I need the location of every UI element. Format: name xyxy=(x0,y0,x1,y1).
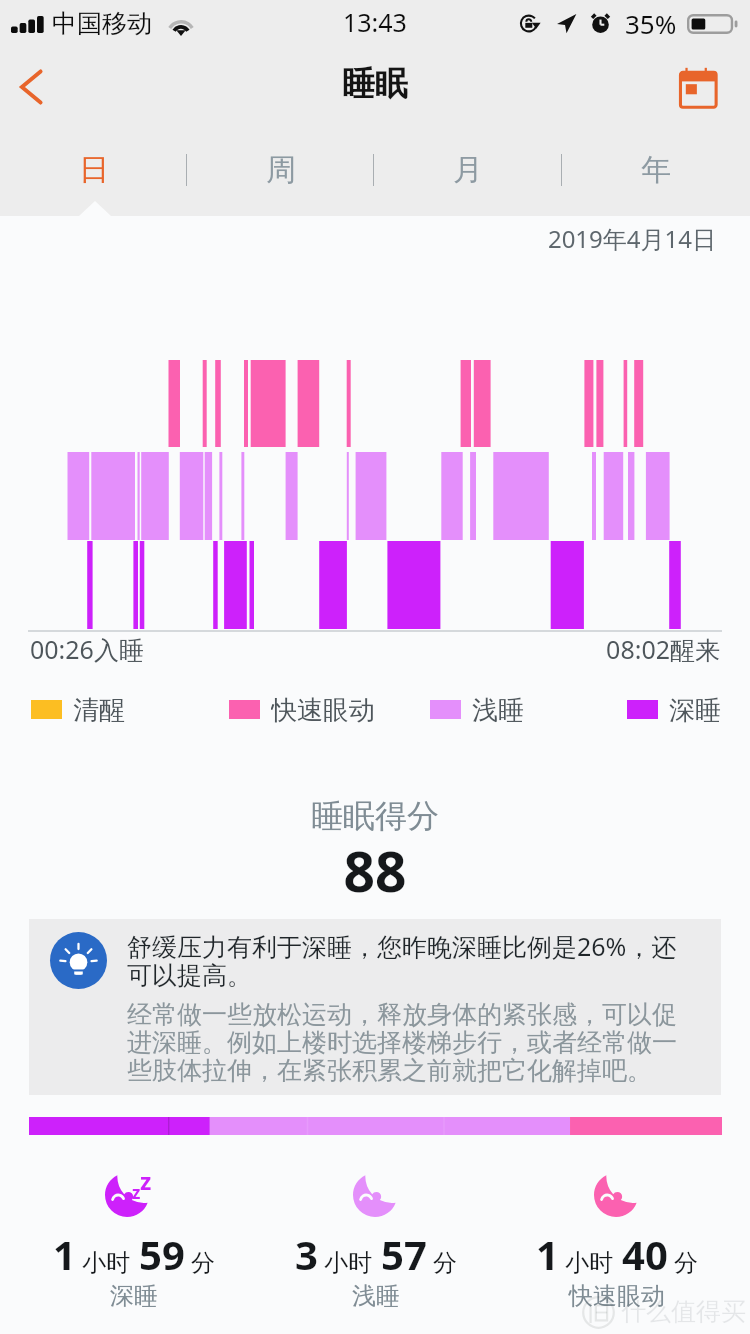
staticText: 经常做一些放松运动，释放身体的紧张感，可以促进深睡。例如上楼时选择楼梯步行，或者… xyxy=(127,999,693,1086)
staticText: z xyxy=(140,1165,152,1196)
staticText: 13:43 xyxy=(343,5,407,39)
staticText: 日 xyxy=(79,151,109,189)
staticText: 月 xyxy=(453,151,483,189)
staticText: 59 xyxy=(139,1227,185,1281)
button[interactable]: 浅睡 xyxy=(430,694,524,724)
staticText: 00:26入睡 xyxy=(30,632,144,666)
staticText: 88 xyxy=(0,833,750,908)
staticText: 清醒 xyxy=(73,694,125,724)
button[interactable]: 快速眼动 xyxy=(229,694,375,724)
staticText: 分 xyxy=(433,1248,457,1278)
button[interactable]: z xyxy=(13,1167,255,1311)
staticText: 深睡 xyxy=(669,694,721,724)
button[interactable]: 日 xyxy=(0,128,187,216)
staticText: 57 xyxy=(381,1227,427,1281)
button[interactable]: 年 xyxy=(562,128,750,216)
staticText: 浅睡 xyxy=(352,1281,400,1311)
staticText: 什么值得买 xyxy=(621,1296,746,1327)
staticText: 小时 xyxy=(82,1248,130,1278)
staticText: 快速眼动 xyxy=(569,1281,665,1311)
button[interactable]: 日历 xyxy=(676,65,720,109)
button[interactable]: 月 xyxy=(374,128,562,216)
staticText: 1 xyxy=(53,1227,76,1281)
staticText: 快速眼动 xyxy=(271,694,375,724)
staticText: 08:02醒来 xyxy=(0,632,720,666)
staticText: 小时 xyxy=(565,1248,613,1278)
staticText: 周 xyxy=(266,151,296,189)
button[interactable]: 舒缓压力有利于深睡，您昨晚深睡比例是26%，还可以提高。 xyxy=(29,919,721,1095)
staticText: 深睡 xyxy=(110,1281,158,1311)
button[interactable]: 3 xyxy=(255,1167,496,1311)
staticText: 小时 xyxy=(324,1248,372,1278)
staticText: 中国移动 xyxy=(52,8,152,39)
button[interactable]: 周 xyxy=(187,128,374,216)
staticText: 舒缓压力有利于深睡，您昨晚深睡比例是26%，还可以提高。 xyxy=(127,929,693,991)
button[interactable]: 1 xyxy=(496,1167,737,1311)
button[interactable]: 深睡 xyxy=(627,694,721,724)
staticText: 睡眠 xyxy=(342,63,408,105)
staticText: 年 xyxy=(641,151,671,189)
staticText: 35% xyxy=(625,6,677,41)
staticText: 1 xyxy=(536,1227,559,1281)
staticText: 分 xyxy=(674,1248,698,1278)
button[interactable]: 清醒 xyxy=(31,694,125,724)
staticText: 分 xyxy=(191,1248,215,1278)
staticText: 40 xyxy=(622,1227,668,1281)
staticText: z xyxy=(132,1181,141,1204)
staticText: 睡眠得分 xyxy=(0,796,750,836)
staticText: 3 xyxy=(295,1227,318,1281)
button[interactable]: 返回 xyxy=(2,57,62,117)
staticText: 2019年4月14日 xyxy=(0,222,716,255)
staticText: 浅睡 xyxy=(472,694,524,724)
button[interactable] xyxy=(0,1117,750,1135)
